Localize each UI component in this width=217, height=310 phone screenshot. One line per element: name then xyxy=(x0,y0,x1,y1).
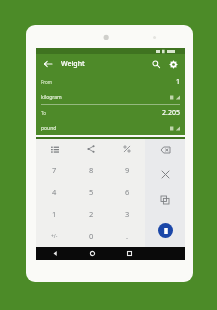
staticText: 1 xyxy=(52,209,57,219)
button[interactable]: Share xyxy=(73,139,109,159)
button[interactable]: 7 xyxy=(36,159,73,181)
button[interactable]: Back xyxy=(41,57,55,71)
staticText: 8 xyxy=(89,165,94,175)
button[interactable]: 1 xyxy=(36,203,73,225)
button[interactable]: Settings xyxy=(166,57,180,71)
button[interactable]: 0 xyxy=(73,225,109,247)
button[interactable]: Recents xyxy=(111,247,148,260)
staticText: 0 xyxy=(89,231,94,241)
button[interactable]: +/- xyxy=(36,225,73,247)
staticText: 5 xyxy=(89,187,94,197)
button[interactable]: Paste xyxy=(158,223,173,238)
button[interactable]: 9 xyxy=(109,159,145,181)
button[interactable]: Close xyxy=(145,161,185,187)
staticText: 7 xyxy=(52,165,57,175)
staticText: 4 xyxy=(52,187,57,197)
button[interactable]: Search xyxy=(149,57,163,71)
staticText: 1 xyxy=(175,77,180,87)
button[interactable]: 5 xyxy=(73,181,109,203)
button[interactable]: Backspace xyxy=(145,139,185,161)
staticText: 6 xyxy=(125,187,130,197)
button[interactable]: 2 xyxy=(73,203,109,225)
button[interactable]: 8 xyxy=(73,159,109,181)
button[interactable]: Back xyxy=(36,247,74,260)
staticText: To xyxy=(41,110,46,116)
button[interactable]: Home xyxy=(74,247,111,260)
button[interactable]: 6 xyxy=(109,181,145,203)
staticText: 2 xyxy=(89,209,94,219)
staticText: kilogram xyxy=(41,94,62,101)
staticText: 2.205 xyxy=(162,108,180,118)
button[interactable]: Percent xyxy=(109,139,145,159)
staticText: +/- xyxy=(51,233,58,240)
staticText: pound xyxy=(41,125,57,132)
button[interactable]: From xyxy=(36,74,185,104)
staticText: From xyxy=(41,79,53,85)
staticText: . xyxy=(126,231,129,241)
button[interactable]: 3 xyxy=(109,203,145,225)
button[interactable]: List xyxy=(36,139,73,159)
staticText: 9 xyxy=(125,165,130,175)
staticText: Weight xyxy=(61,59,85,69)
button[interactable]: Copy xyxy=(145,187,185,213)
staticText: 3 xyxy=(125,209,130,219)
button[interactable]: To xyxy=(36,105,185,135)
button[interactable]: 4 xyxy=(36,181,73,203)
